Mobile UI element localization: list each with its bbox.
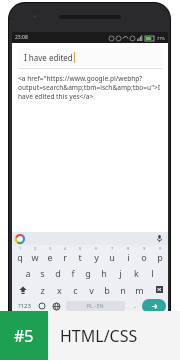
button[interactable]: #5 <box>0 311 180 360</box>
staticText: h <box>101 267 107 279</box>
button[interactable]: x <box>51 281 67 298</box>
button[interactable]: m <box>131 281 147 298</box>
staticText: e <box>47 251 53 263</box>
button[interactable]: 7 <box>104 245 120 264</box>
button[interactable]: k <box>128 264 144 281</box>
button[interactable]: 9 <box>136 245 152 264</box>
staticText: q <box>17 251 23 263</box>
staticText: . <box>134 301 136 311</box>
button[interactable]: Enter <box>142 299 166 313</box>
staticText: n <box>120 284 126 296</box>
staticText: 8 <box>127 246 130 251</box>
staticText: 3 <box>49 246 52 251</box>
staticText: I have edited <box>24 52 73 63</box>
staticText: b <box>104 284 110 296</box>
staticText: r <box>63 251 67 263</box>
button[interactable]: z <box>34 281 51 298</box>
staticText: i <box>127 251 130 263</box>
staticText: <a href="https://www.google.pl/webhp? <box>18 74 143 83</box>
other: Google <box>16 235 24 243</box>
staticText: #5 <box>14 325 34 347</box>
button[interactable]: 3 <box>42 245 57 264</box>
button[interactable]: . <box>127 298 142 314</box>
staticText: PL - EN <box>87 303 104 310</box>
staticText: f <box>71 267 75 279</box>
staticText: a <box>25 267 31 279</box>
staticText: 6 <box>95 246 98 251</box>
staticText: 9 <box>143 246 146 251</box>
staticText: 0 <box>159 246 162 251</box>
button[interactable]: g <box>80 264 96 281</box>
staticText: x <box>57 284 62 296</box>
button[interactable]: 6 <box>88 245 104 264</box>
staticText: 23:08 <box>15 34 28 41</box>
button[interactable]: d <box>50 264 65 281</box>
button[interactable]: Shift <box>12 281 34 298</box>
staticText: 5 <box>79 246 82 251</box>
staticText: u <box>109 251 115 263</box>
button[interactable]: 2 <box>27 245 42 264</box>
button[interactable]: 8 <box>120 245 136 264</box>
staticText: m <box>135 284 144 296</box>
staticText: ?123 <box>18 302 31 310</box>
staticText: have edited this yes</a> <box>18 92 94 101</box>
staticText: p <box>157 251 163 263</box>
staticText: o <box>141 251 147 263</box>
button[interactable]: Backspace <box>147 281 168 298</box>
button[interactable]: v <box>83 281 99 298</box>
button[interactable]: f <box>65 264 80 281</box>
button[interactable]: I have edited <box>18 48 162 67</box>
button[interactable]: s <box>35 264 50 281</box>
staticText: v <box>89 284 94 296</box>
button[interactable]: 1 <box>12 245 27 264</box>
button[interactable]: j <box>112 264 128 281</box>
staticText: HTML/CSS Webs <box>60 325 180 347</box>
staticText: l <box>151 267 154 279</box>
staticText: t <box>78 251 82 263</box>
button[interactable]: PL - EN <box>66 301 125 311</box>
staticText: g <box>85 267 91 279</box>
button[interactable]: ?123 <box>14 298 34 314</box>
button[interactable]: Emoji <box>34 298 49 314</box>
button[interactable]: c <box>67 281 83 298</box>
staticText: 1 <box>19 246 22 251</box>
button[interactable]: Change language <box>49 298 64 314</box>
staticText: y <box>94 251 99 263</box>
staticText: d <box>55 267 61 279</box>
button[interactable]: b <box>99 281 115 298</box>
button[interactable]: n <box>115 281 131 298</box>
staticText: j <box>119 267 122 279</box>
staticText: w <box>31 251 39 263</box>
button[interactable]: h <box>96 264 112 281</box>
staticText: z <box>40 284 45 296</box>
staticText: c <box>73 284 78 296</box>
staticText: 77% <box>157 36 165 41</box>
button[interactable]: l <box>144 264 160 281</box>
staticText: k <box>134 267 139 279</box>
staticText: 7 <box>111 246 114 251</box>
button[interactable]: 0 <box>152 245 168 264</box>
button[interactable]: 5 <box>72 245 88 264</box>
button[interactable]: a <box>20 264 35 281</box>
staticText: output=search&amp;tbm=isch&amp;tbo=u">I <box>18 83 160 92</box>
staticText: 4 <box>64 246 67 251</box>
staticText: 2 <box>34 246 37 251</box>
other: Voice input <box>156 235 163 242</box>
staticText: s <box>40 267 45 279</box>
button[interactable]: 4 <box>57 245 72 264</box>
